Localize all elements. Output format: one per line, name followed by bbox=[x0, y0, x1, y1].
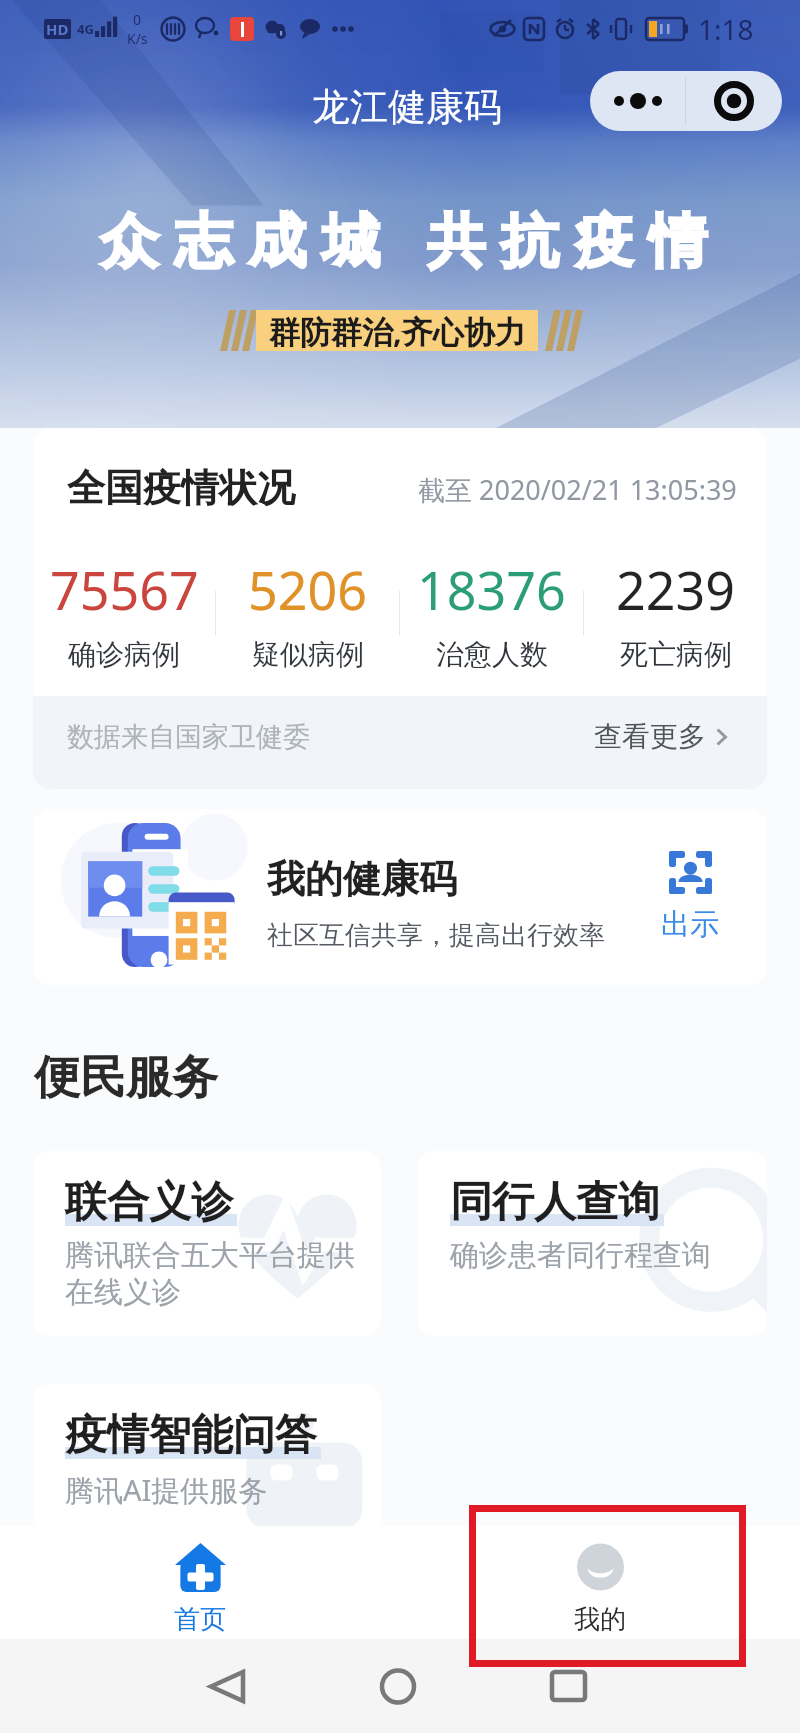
staticText: 5206 bbox=[248, 554, 367, 625]
staticText: 群防群治,齐心协力 bbox=[269, 310, 526, 351]
button[interactable]: Back bbox=[209, 1670, 245, 1703]
staticText: 全国疫情状况 bbox=[67, 464, 295, 512]
staticText: 确诊病例 bbox=[68, 637, 180, 672]
staticText: 18376 bbox=[417, 554, 566, 625]
staticText: 死亡病例 bbox=[620, 637, 732, 672]
staticText: 数据来自国家卫健委 bbox=[67, 720, 310, 754]
staticText: 查看更多 bbox=[594, 719, 706, 754]
button[interactable]: 我的健康码 bbox=[33, 809, 767, 985]
button[interactable]: More options bbox=[590, 71, 782, 131]
staticText: 在线义诊 bbox=[65, 1274, 181, 1311]
staticText: 治愈人数 bbox=[436, 637, 548, 672]
staticText: 同行人查询 bbox=[450, 1176, 660, 1229]
staticText: 社区互信共享，提高出行效率 bbox=[267, 919, 605, 952]
staticText: 龙江健康码 bbox=[312, 83, 502, 131]
button[interactable]: 数据来自国家卫健委 bbox=[33, 696, 767, 789]
staticText: 首页 bbox=[174, 1603, 226, 1636]
staticText: 联合义诊 bbox=[65, 1176, 233, 1229]
staticText: 截至 2020/02/21 13:05:39 bbox=[418, 471, 737, 508]
button[interactable]: 疫情智能问答 bbox=[33, 1384, 381, 1569]
staticText: 疫情智能问答 bbox=[65, 1409, 317, 1462]
other: More options bbox=[590, 71, 685, 131]
staticText: 腾讯AI提供服务 bbox=[65, 1470, 268, 1510]
staticText: 疑似病例 bbox=[252, 637, 364, 672]
staticText: HD bbox=[46, 19, 69, 39]
staticText: 0 bbox=[133, 10, 142, 29]
staticText: 75567 bbox=[50, 554, 199, 625]
staticText: 确诊患者同行程查询 bbox=[450, 1237, 711, 1274]
staticText: 便民服务 bbox=[34, 1049, 218, 1107]
button[interactable]: Home bbox=[378, 1670, 418, 1703]
staticText: 1:18 bbox=[698, 10, 754, 48]
staticText: 4G bbox=[77, 20, 94, 38]
button[interactable]: Recent apps bbox=[550, 1671, 587, 1701]
button[interactable]: 我的 bbox=[400, 1526, 800, 1639]
staticText: K/s bbox=[127, 29, 148, 48]
staticText: 我的健康码 bbox=[267, 855, 457, 903]
other: Close mini program bbox=[686, 71, 782, 131]
staticText: 腾讯联合五大平台提供 bbox=[65, 1237, 355, 1274]
other: Show health code bbox=[661, 851, 719, 943]
button[interactable]: 同行人查询 bbox=[418, 1151, 767, 1336]
button[interactable]: 联合义诊 bbox=[33, 1151, 381, 1336]
staticText: 我的 bbox=[574, 1603, 626, 1636]
staticText: 出示 bbox=[661, 906, 719, 943]
staticText: 众志成城 共抗疫情 bbox=[100, 199, 724, 278]
button[interactable]: 首页 bbox=[0, 1526, 400, 1639]
staticText: 2239 bbox=[616, 554, 735, 625]
